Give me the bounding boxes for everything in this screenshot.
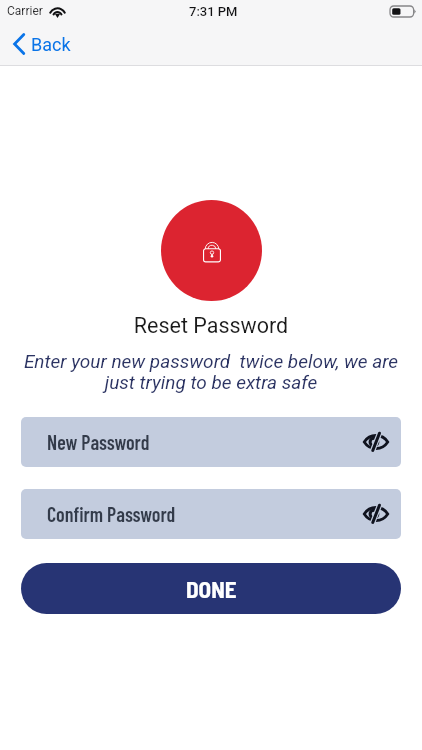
staticText: Confirm Password <box>47 502 176 526</box>
button[interactable]: New Password <box>21 417 401 467</box>
staticText: Back <box>31 34 71 55</box>
staticText: Enter your new password twice below, we … <box>0 350 422 394</box>
staticText: DONE <box>186 575 237 603</box>
staticText: Carrier <box>7 4 43 18</box>
button[interactable]: Show password <box>362 500 390 528</box>
staticText: New Password <box>47 430 150 454</box>
button[interactable]: DONE <box>21 563 401 614</box>
staticText: Reset Password <box>0 313 422 338</box>
staticText: 7:31 PM <box>189 4 238 19</box>
button[interactable]: Show password <box>362 428 390 456</box>
button[interactable]: Confirm Password <box>21 489 401 539</box>
button[interactable]: Back <box>0 29 81 59</box>
